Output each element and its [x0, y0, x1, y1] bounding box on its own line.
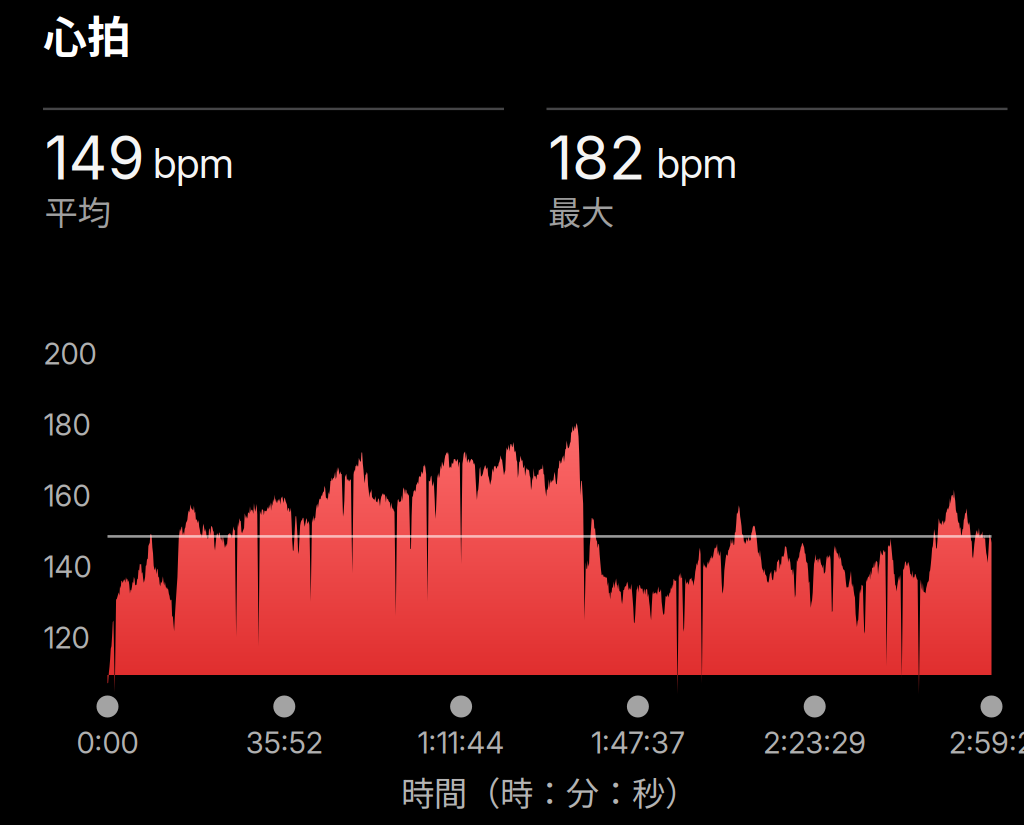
- staticText: 心拍: [43, 2, 131, 66]
- staticText: 200: [43, 336, 96, 372]
- staticText: bpm: [656, 138, 737, 188]
- staticText: 平均: [44, 186, 110, 235]
- staticText: 160: [43, 478, 90, 514]
- staticText: 180: [43, 407, 90, 443]
- staticText: 35:52: [246, 725, 323, 760]
- staticText: 149: [44, 121, 144, 194]
- staticText: 2:59:2: [949, 725, 1024, 760]
- staticText: 182: [548, 121, 646, 194]
- staticText: 2:23:29: [763, 725, 866, 760]
- staticText: bpm: [153, 138, 234, 188]
- staticText: 最大: [548, 186, 614, 235]
- staticText: 140: [43, 549, 91, 585]
- staticText: 1:11:44: [418, 725, 505, 760]
- staticText: 時間（時：分：秒）: [401, 767, 698, 815]
- staticText: 120: [43, 620, 89, 656]
- staticText: 0:00: [76, 725, 138, 760]
- staticText: 1:47:37: [591, 725, 685, 760]
